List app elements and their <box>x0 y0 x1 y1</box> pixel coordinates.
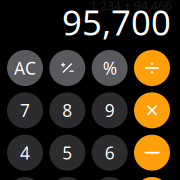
button[interactable]: 2 <box>49 177 85 180</box>
staticText: AC <box>14 56 36 79</box>
staticText: % <box>103 56 117 79</box>
button[interactable]: Minus <box>134 135 170 171</box>
staticText: 6 <box>105 141 115 164</box>
staticText: 8 <box>62 99 72 122</box>
button[interactable]: AC <box>7 50 43 86</box>
button[interactable]: 4 <box>7 135 43 171</box>
staticText: 5 <box>62 141 72 164</box>
button[interactable]: 7 <box>7 92 43 128</box>
button[interactable]: 5 <box>49 135 85 171</box>
button[interactable]: % <box>92 50 128 86</box>
staticText: 7 <box>20 99 30 122</box>
button[interactable]: Multiply <box>134 92 170 128</box>
button[interactable]: Divide <box>134 50 170 86</box>
staticText: 9 <box>105 99 115 122</box>
button[interactable]: Plus Minus <box>49 50 85 86</box>
button[interactable]: 8 <box>49 92 85 128</box>
button[interactable]: 9 <box>92 92 128 128</box>
button[interactable]: Plus <box>134 177 170 180</box>
staticText: 95,700 <box>62 0 171 45</box>
staticText: 1,234 + 94,466 <box>90 0 172 13</box>
button[interactable]: 1 <box>7 177 43 180</box>
staticText: 4 <box>20 141 30 164</box>
button[interactable]: 6 <box>92 135 128 171</box>
button[interactable]: 3 <box>92 177 128 180</box>
